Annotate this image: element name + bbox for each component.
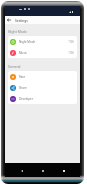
button[interactable]: Developer xyxy=(8,93,77,104)
staticText: Rate xyxy=(19,75,26,79)
button[interactable]: Share xyxy=(8,82,77,93)
staticText: Developer xyxy=(19,97,33,101)
staticText: General xyxy=(8,64,21,69)
button[interactable]: Music xyxy=(8,47,77,58)
button[interactable]: Home xyxy=(38,166,47,175)
button[interactable]: Navigate up xyxy=(5,16,13,24)
button[interactable]: Rate xyxy=(8,71,77,82)
staticText: Music xyxy=(19,51,27,55)
staticText: Night Mode xyxy=(8,29,27,34)
staticText: Night Mode xyxy=(19,40,36,44)
staticText: Settings xyxy=(15,18,28,22)
button[interactable]: Back xyxy=(17,166,26,175)
button[interactable]: Recent apps xyxy=(59,166,68,175)
button[interactable]: Night Mode xyxy=(8,36,77,47)
staticText: Share xyxy=(19,86,27,90)
